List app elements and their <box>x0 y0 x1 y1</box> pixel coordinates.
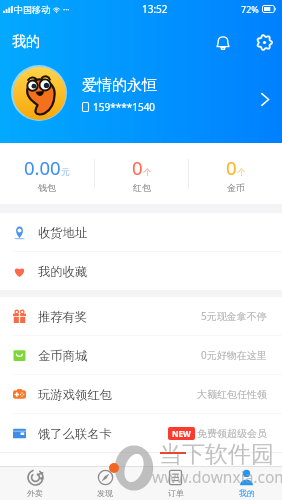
staticText: 我的 <box>12 33 40 51</box>
staticText: 免费领超级会员 <box>197 427 267 440</box>
staticText: 0 <box>226 155 237 180</box>
staticText: 大额红包任性领 <box>197 388 267 401</box>
button[interactable]: 0.00 <box>0 143 94 204</box>
button[interactable]: 玩游戏领红包 <box>0 375 282 413</box>
button[interactable]: 订单 <box>140 467 211 500</box>
staticText: 收货地址 <box>38 225 88 240</box>
button[interactable]: 0 <box>95 143 188 204</box>
staticText: 钱包 <box>38 182 56 193</box>
button[interactable]: 饿了么联名卡 <box>0 414 282 452</box>
staticText: 金币商城 <box>38 348 88 363</box>
staticText: NEW <box>172 428 191 439</box>
staticText: 0 <box>132 155 143 180</box>
button[interactable]: Settings <box>250 28 278 56</box>
staticText: 159****1540 <box>93 100 156 114</box>
staticText: www.downxia.com <box>152 466 282 487</box>
button[interactable]: 发现 <box>70 467 140 500</box>
staticText: 13:52 <box>142 2 168 16</box>
staticText: 个 <box>237 167 246 178</box>
button[interactable]: 推荐有奖 <box>0 297 282 335</box>
button[interactable]: 爱情的永恒 <box>0 54 282 131</box>
staticText: 玩游戏领红包 <box>38 387 112 402</box>
staticText: 5元现金拿不停 <box>201 309 267 323</box>
staticText: 我的 <box>239 488 255 498</box>
staticText: 饿了么联名卡 <box>38 426 112 441</box>
staticText: 0.00 <box>24 155 61 180</box>
staticText: 金币 <box>227 182 245 193</box>
staticText: 爱情的永恒 <box>82 76 157 95</box>
staticText: 中国移动 <box>14 4 50 15</box>
staticText: 72% <box>241 3 259 15</box>
button[interactable]: 收货地址 <box>0 213 282 251</box>
button[interactable]: 外卖 <box>0 467 70 500</box>
staticText: 元 <box>61 167 70 178</box>
button[interactable]: 我的 <box>211 467 282 500</box>
button[interactable]: 我的收藏 <box>0 252 282 290</box>
staticText: 外卖 <box>27 488 43 498</box>
staticText: 0元好物在这里 <box>201 348 267 362</box>
button[interactable]: Notifications <box>209 28 237 56</box>
button[interactable]: 0 <box>189 143 282 204</box>
staticText: 当下软件园 <box>159 440 274 469</box>
staticText: 发现 <box>97 488 113 498</box>
button[interactable]: 金币商城 <box>0 336 282 374</box>
staticText: 红包 <box>133 182 151 193</box>
staticText: 我的收藏 <box>38 264 88 279</box>
staticText: ··· <box>63 4 70 15</box>
staticText: 订单 <box>168 488 184 498</box>
staticText: 个 <box>143 167 152 178</box>
staticText: 推荐有奖 <box>38 309 88 324</box>
